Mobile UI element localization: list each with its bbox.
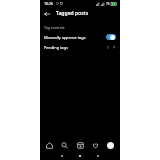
- button[interactable]: Activity: [89, 139, 102, 152]
- button[interactable]: Pending tags: [40, 42, 120, 52]
- button[interactable]: Profile: [104, 139, 117, 152]
- button[interactable]: Home: [43, 139, 56, 152]
- button[interactable]: Manually approve tags: [40, 32, 120, 42]
- staticText: Tag controls: [44, 25, 65, 30]
- staticText: Manually approve tags: [44, 35, 106, 40]
- button[interactable]: Back: [42, 9, 52, 19]
- staticText: 10:26: [44, 1, 53, 6]
- button[interactable]: Search: [58, 139, 71, 152]
- button[interactable]: Reels: [74, 139, 87, 152]
- staticText: 1: [107, 45, 110, 50]
- staticText: Tagged posts: [56, 10, 89, 17]
- staticText: 76: [106, 2, 110, 6]
- staticText: Pending tags: [44, 45, 107, 50]
